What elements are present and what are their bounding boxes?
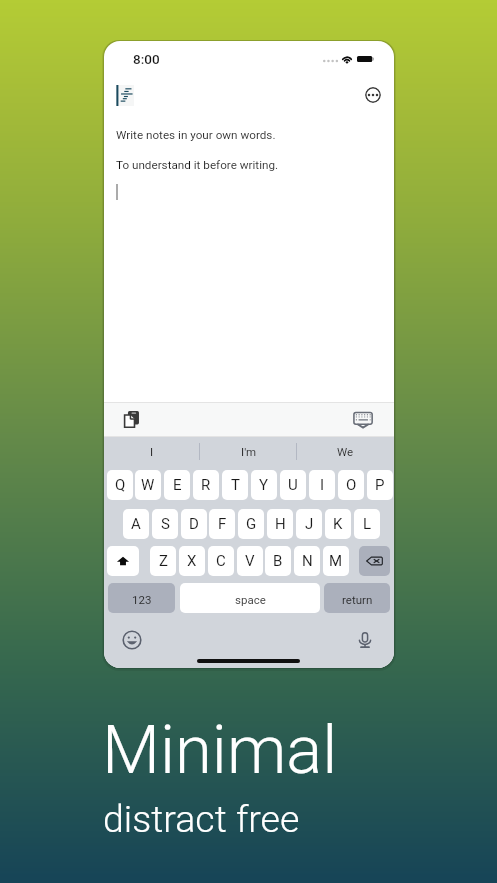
staticText: K <box>333 515 343 533</box>
staticText: 123 <box>132 593 152 606</box>
staticText: R <box>201 476 211 494</box>
button[interactable]: F <box>209 509 235 539</box>
button[interactable]: W <box>135 470 161 500</box>
staticText: P <box>375 476 385 494</box>
staticText: A <box>131 515 141 533</box>
staticText: return <box>342 593 373 606</box>
button[interactable]: G <box>238 509 264 539</box>
button[interactable]: More options <box>365 87 381 103</box>
button[interactable]: return <box>324 583 390 613</box>
staticText: I'm <box>241 445 257 458</box>
button[interactable]: I <box>104 437 200 467</box>
staticText: I <box>320 476 325 494</box>
button[interactable]: P <box>367 470 393 500</box>
staticText: distract free <box>103 797 300 841</box>
staticText: Write notes in your own words. <box>116 128 276 142</box>
button[interactable]: J <box>296 509 322 539</box>
button[interactable]: S <box>152 509 178 539</box>
staticText: W <box>141 476 155 494</box>
button[interactable]: Emoji <box>122 630 142 650</box>
staticText: D <box>189 515 199 533</box>
staticText: B <box>273 552 283 570</box>
staticText: V <box>245 552 255 570</box>
button[interactable]: Backspace <box>359 546 390 576</box>
staticText: M <box>329 552 343 570</box>
staticText: E <box>173 476 182 494</box>
button[interactable]: C <box>208 546 234 576</box>
button[interactable]: Voice input <box>355 630 375 650</box>
button[interactable]: Copy <box>120 408 143 431</box>
button[interactable]: Z <box>150 546 176 576</box>
button[interactable]: X <box>179 546 205 576</box>
staticText: We <box>337 445 354 458</box>
staticText: To understand it before writing. <box>116 158 279 172</box>
staticText: Z <box>159 552 168 570</box>
button[interactable]: Shift <box>107 546 139 576</box>
staticText: 8:00 <box>133 51 160 67</box>
button[interactable]: U <box>280 470 306 500</box>
button[interactable]: I <box>309 470 335 500</box>
button[interactable]: Hide keyboard <box>352 408 376 432</box>
staticText: Minimal <box>102 711 338 790</box>
staticText: G <box>246 515 257 533</box>
button[interactable]: H <box>267 509 293 539</box>
button[interactable]: 123 <box>108 583 175 613</box>
staticText: J <box>305 515 314 533</box>
staticText: N <box>302 552 313 570</box>
button[interactable]: R <box>193 470 219 500</box>
button[interactable]: We <box>297 437 394 467</box>
staticText: X <box>187 552 197 570</box>
button[interactable]: D <box>181 509 207 539</box>
staticText: H <box>275 515 286 533</box>
button[interactable]: E <box>164 470 190 500</box>
button[interactable]: B <box>265 546 291 576</box>
staticText: space <box>235 593 266 606</box>
button[interactable]: A <box>123 509 149 539</box>
button[interactable]: O <box>338 470 364 500</box>
button[interactable]: T <box>222 470 248 500</box>
button[interactable]: N <box>294 546 320 576</box>
button[interactable]: V <box>237 546 263 576</box>
staticText: S <box>161 515 170 533</box>
staticText: L <box>363 515 372 533</box>
staticText: T <box>231 476 240 494</box>
staticText: U <box>288 476 298 494</box>
button[interactable]: Q <box>107 470 133 500</box>
button[interactable]: M <box>323 546 349 576</box>
button[interactable]: Y <box>251 470 277 500</box>
staticText: Y <box>259 476 269 494</box>
staticText: F <box>218 515 227 533</box>
button[interactable]: L <box>354 509 380 539</box>
button[interactable]: Note <box>116 85 134 106</box>
staticText: I <box>150 445 154 458</box>
staticText: O <box>346 476 357 494</box>
button[interactable]: space <box>180 583 320 613</box>
staticText: Q <box>115 476 126 494</box>
staticText: C <box>216 552 226 570</box>
button[interactable]: K <box>325 509 351 539</box>
button[interactable]: I'm <box>200 437 297 467</box>
